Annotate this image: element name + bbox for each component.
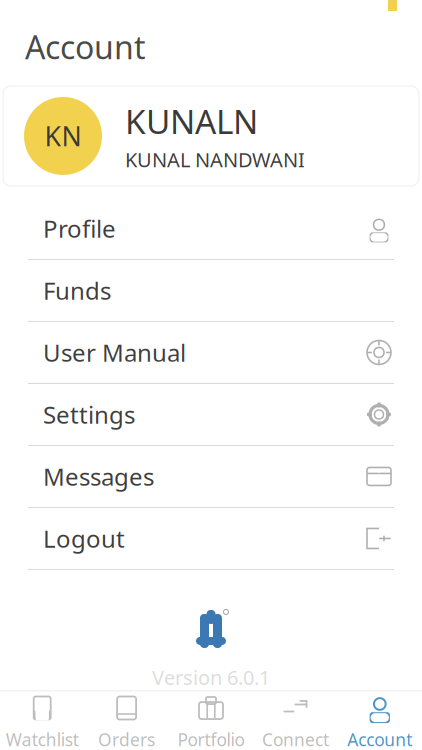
staticText: Account xyxy=(347,728,412,750)
button[interactable]: Account xyxy=(338,691,422,750)
staticText: Profile xyxy=(43,212,116,244)
staticText: User Manual xyxy=(43,336,186,368)
button[interactable]: Portfolio xyxy=(169,691,253,750)
staticText: Settings xyxy=(43,398,135,430)
button[interactable]: Connect xyxy=(253,691,338,750)
staticText: Connect xyxy=(262,728,329,750)
button[interactable]: Profile xyxy=(0,198,422,260)
staticText: Portfolio xyxy=(177,728,244,750)
staticText: Orders xyxy=(98,728,155,750)
button[interactable]: User Manual xyxy=(0,322,422,384)
button[interactable]: Orders xyxy=(84,691,169,750)
button[interactable]: Watchlist xyxy=(0,691,84,750)
button[interactable]: Logout xyxy=(0,508,422,570)
button[interactable]: Messages xyxy=(0,446,422,508)
staticText: Funds xyxy=(43,274,111,306)
button[interactable]: Settings xyxy=(0,384,422,446)
staticText: Watchlist xyxy=(6,728,79,750)
staticText: KN xyxy=(44,118,81,154)
staticText: Logout xyxy=(43,522,125,554)
staticText: Version 6.0.1 xyxy=(152,664,270,691)
button[interactable]: Funds xyxy=(0,260,422,322)
staticText: Account xyxy=(25,25,146,68)
staticText: KUNAL NANDWANI xyxy=(125,146,305,173)
staticText: Messages xyxy=(43,460,154,492)
staticText: KUNALN xyxy=(125,99,258,143)
